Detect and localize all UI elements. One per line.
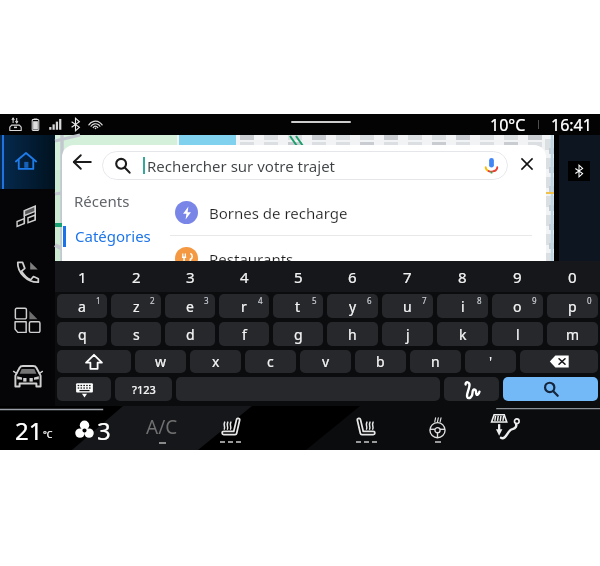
button[interactable]: u: [382, 294, 433, 318]
staticText: s: [133, 325, 140, 344]
button[interactable]: Apps: [0, 297, 55, 343]
button[interactable]: r: [219, 294, 269, 318]
staticText: 4: [240, 267, 249, 287]
staticText: 2: [150, 295, 155, 306]
staticText: f: [242, 325, 247, 344]
button[interactable]: Home: [0, 135, 55, 189]
button[interactable]: Phone: [0, 246, 55, 292]
button[interactable]: 2: [109, 261, 163, 292]
staticText: ': [489, 352, 493, 371]
button[interactable]: h: [327, 322, 378, 346]
button[interactable]: j: [382, 322, 433, 346]
button[interactable]: g: [273, 322, 323, 346]
staticText: r: [241, 297, 247, 316]
staticText: 21: [15, 414, 43, 447]
button[interactable]: l: [492, 322, 543, 346]
button[interactable]: Defrost: [488, 409, 524, 445]
staticText: z: [133, 297, 140, 316]
button[interactable]: b: [355, 350, 406, 373]
button[interactable]: Car: [0, 352, 55, 398]
button[interactable]: Catégories: [62, 225, 168, 247]
button[interactable]: Rechercher sur votre trajet: [102, 151, 508, 180]
staticText: 8: [458, 267, 467, 287]
button[interactable]: Media: [0, 193, 55, 239]
button[interactable]: e: [165, 294, 215, 318]
staticText: v: [322, 352, 330, 371]
button[interactable]: f: [219, 322, 269, 346]
button[interactable]: p: [547, 294, 598, 318]
button[interactable]: 8: [435, 261, 490, 292]
button[interactable]: Backspace: [520, 350, 598, 373]
button[interactable]: o: [492, 294, 543, 318]
button[interactable]: Back: [65, 150, 99, 174]
staticText: 0: [568, 267, 577, 287]
staticText: Rechercher sur votre trajet: [147, 156, 336, 176]
button[interactable]: Bluetooth: [568, 161, 590, 181]
staticText: g: [294, 325, 303, 344]
button[interactable]: Shift: [57, 350, 131, 373]
button[interactable]: 21: [15, 414, 53, 447]
staticText: i: [461, 297, 465, 316]
button[interactable]: Search: [503, 377, 598, 401]
button[interactable]: A/C: [142, 414, 182, 444]
staticText: q: [78, 325, 87, 344]
button[interactable]: y: [327, 294, 378, 318]
staticText: u: [403, 297, 412, 316]
staticText: 7: [403, 267, 412, 287]
button[interactable]: ?123: [115, 377, 172, 401]
button[interactable]: 1: [55, 261, 109, 292]
button[interactable]: c: [245, 350, 296, 373]
button[interactable]: w: [135, 350, 186, 373]
button[interactable]: 4: [217, 261, 271, 292]
staticText: b: [376, 352, 385, 371]
staticText: 6: [367, 295, 372, 306]
button[interactable]: t: [273, 294, 323, 318]
staticText: 3: [186, 267, 195, 287]
staticText: °C: [43, 428, 53, 440]
button[interactable]: z: [111, 294, 161, 318]
button[interactable]: v: [300, 350, 351, 373]
button[interactable]: ': [465, 350, 516, 373]
button[interactable]: i: [437, 294, 488, 318]
button[interactable]: k: [437, 322, 488, 346]
staticText: c: [267, 352, 274, 371]
button[interactable]: s: [111, 322, 161, 346]
button[interactable]: x: [190, 350, 241, 373]
staticText: Récents: [74, 191, 130, 211]
button[interactable]: 0: [545, 261, 600, 292]
button[interactable]: n: [410, 350, 461, 373]
button[interactable]: q: [57, 322, 107, 346]
staticText: 5: [312, 295, 317, 306]
button[interactable]: 7: [380, 261, 435, 292]
button[interactable]: 3: [74, 414, 111, 447]
button[interactable]: 9: [490, 261, 545, 292]
button[interactable]: 5: [271, 261, 325, 292]
button[interactable]: 3: [163, 261, 217, 292]
button[interactable]: Close: [517, 154, 537, 174]
staticText: 16:41: [551, 114, 592, 135]
button[interactable]: Steering wheel heater: [420, 414, 454, 443]
button[interactable]: Récents: [62, 190, 168, 212]
staticText: Restaurants: [209, 249, 294, 261]
button[interactable]: Restaurants: [168, 236, 546, 261]
button[interactable]: d: [165, 322, 215, 346]
staticText: 0: [587, 295, 592, 306]
button[interactable]: Hide keyboard: [57, 377, 111, 401]
button[interactable]: a: [57, 294, 107, 318]
staticText: 3: [204, 295, 209, 306]
staticText: m: [566, 325, 580, 344]
button[interactable]: Seat heater: [213, 414, 247, 443]
staticText: 3: [97, 414, 111, 447]
button[interactable]: Bornes de recharge: [168, 190, 546, 235]
staticText: o: [513, 297, 522, 316]
button[interactable]: Handwriting: [444, 377, 499, 401]
button[interactable]: 6: [325, 261, 380, 292]
button[interactable]: Seat heater: [349, 414, 383, 443]
staticText: x: [212, 352, 220, 371]
staticText: y: [349, 297, 357, 316]
button[interactable]: m: [547, 322, 598, 346]
staticText: e: [186, 297, 194, 316]
staticText: 8: [477, 295, 482, 306]
staticText: 5: [294, 267, 303, 287]
